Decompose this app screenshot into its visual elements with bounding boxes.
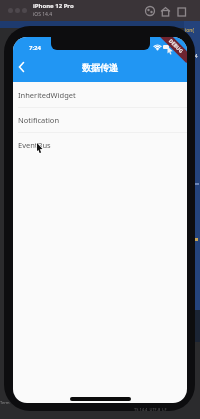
button[interactable] [14,58,30,76]
staticText: Term [0,400,10,405]
staticText: 数据传递 [82,62,118,73]
button[interactable]: InheritedWidget [13,82,187,107]
staticText: iPhone 12 Pro [33,2,74,10]
button[interactable]: Notification [13,107,187,132]
staticText: iOS 14.4 [33,11,53,18]
button[interactable]: EventBus [13,132,187,157]
staticText: Notification [18,115,60,125]
staticText: EventBus [18,140,51,150]
staticText: TS 14.4 UTF-8 LF [134,407,167,412]
staticText: [4 [193,53,198,60]
staticText: ion( [185,27,194,34]
staticText: 7:24 [29,44,41,52]
staticText: InheritedWidget [18,90,76,100]
staticText: DEBUG [167,38,185,55]
